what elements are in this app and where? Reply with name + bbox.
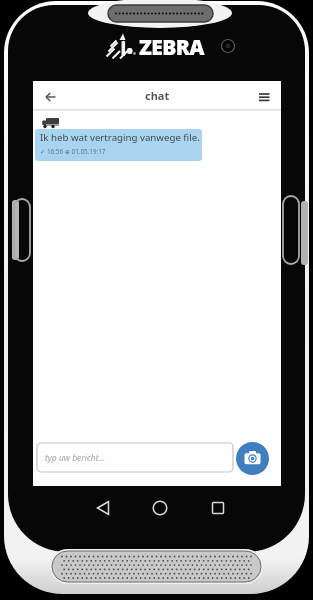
button[interactable] <box>37 443 233 472</box>
button[interactable] <box>207 497 229 519</box>
staticText: ✓ 16:56 ⊕ 01.05.19:17 <box>40 147 106 156</box>
button[interactable] <box>40 87 61 106</box>
staticText: chat <box>145 88 170 103</box>
button[interactable] <box>149 497 171 519</box>
button[interactable] <box>236 442 269 475</box>
staticText: ZEBRA <box>139 33 204 62</box>
staticText: typ uw bericht... <box>45 452 106 464</box>
button[interactable] <box>254 88 274 106</box>
button[interactable]: Ik heb wat vertraging vanwege file. <box>35 129 202 161</box>
button[interactable] <box>92 497 114 519</box>
staticText: Ik heb wat vertraging vanwege file. <box>40 131 200 144</box>
